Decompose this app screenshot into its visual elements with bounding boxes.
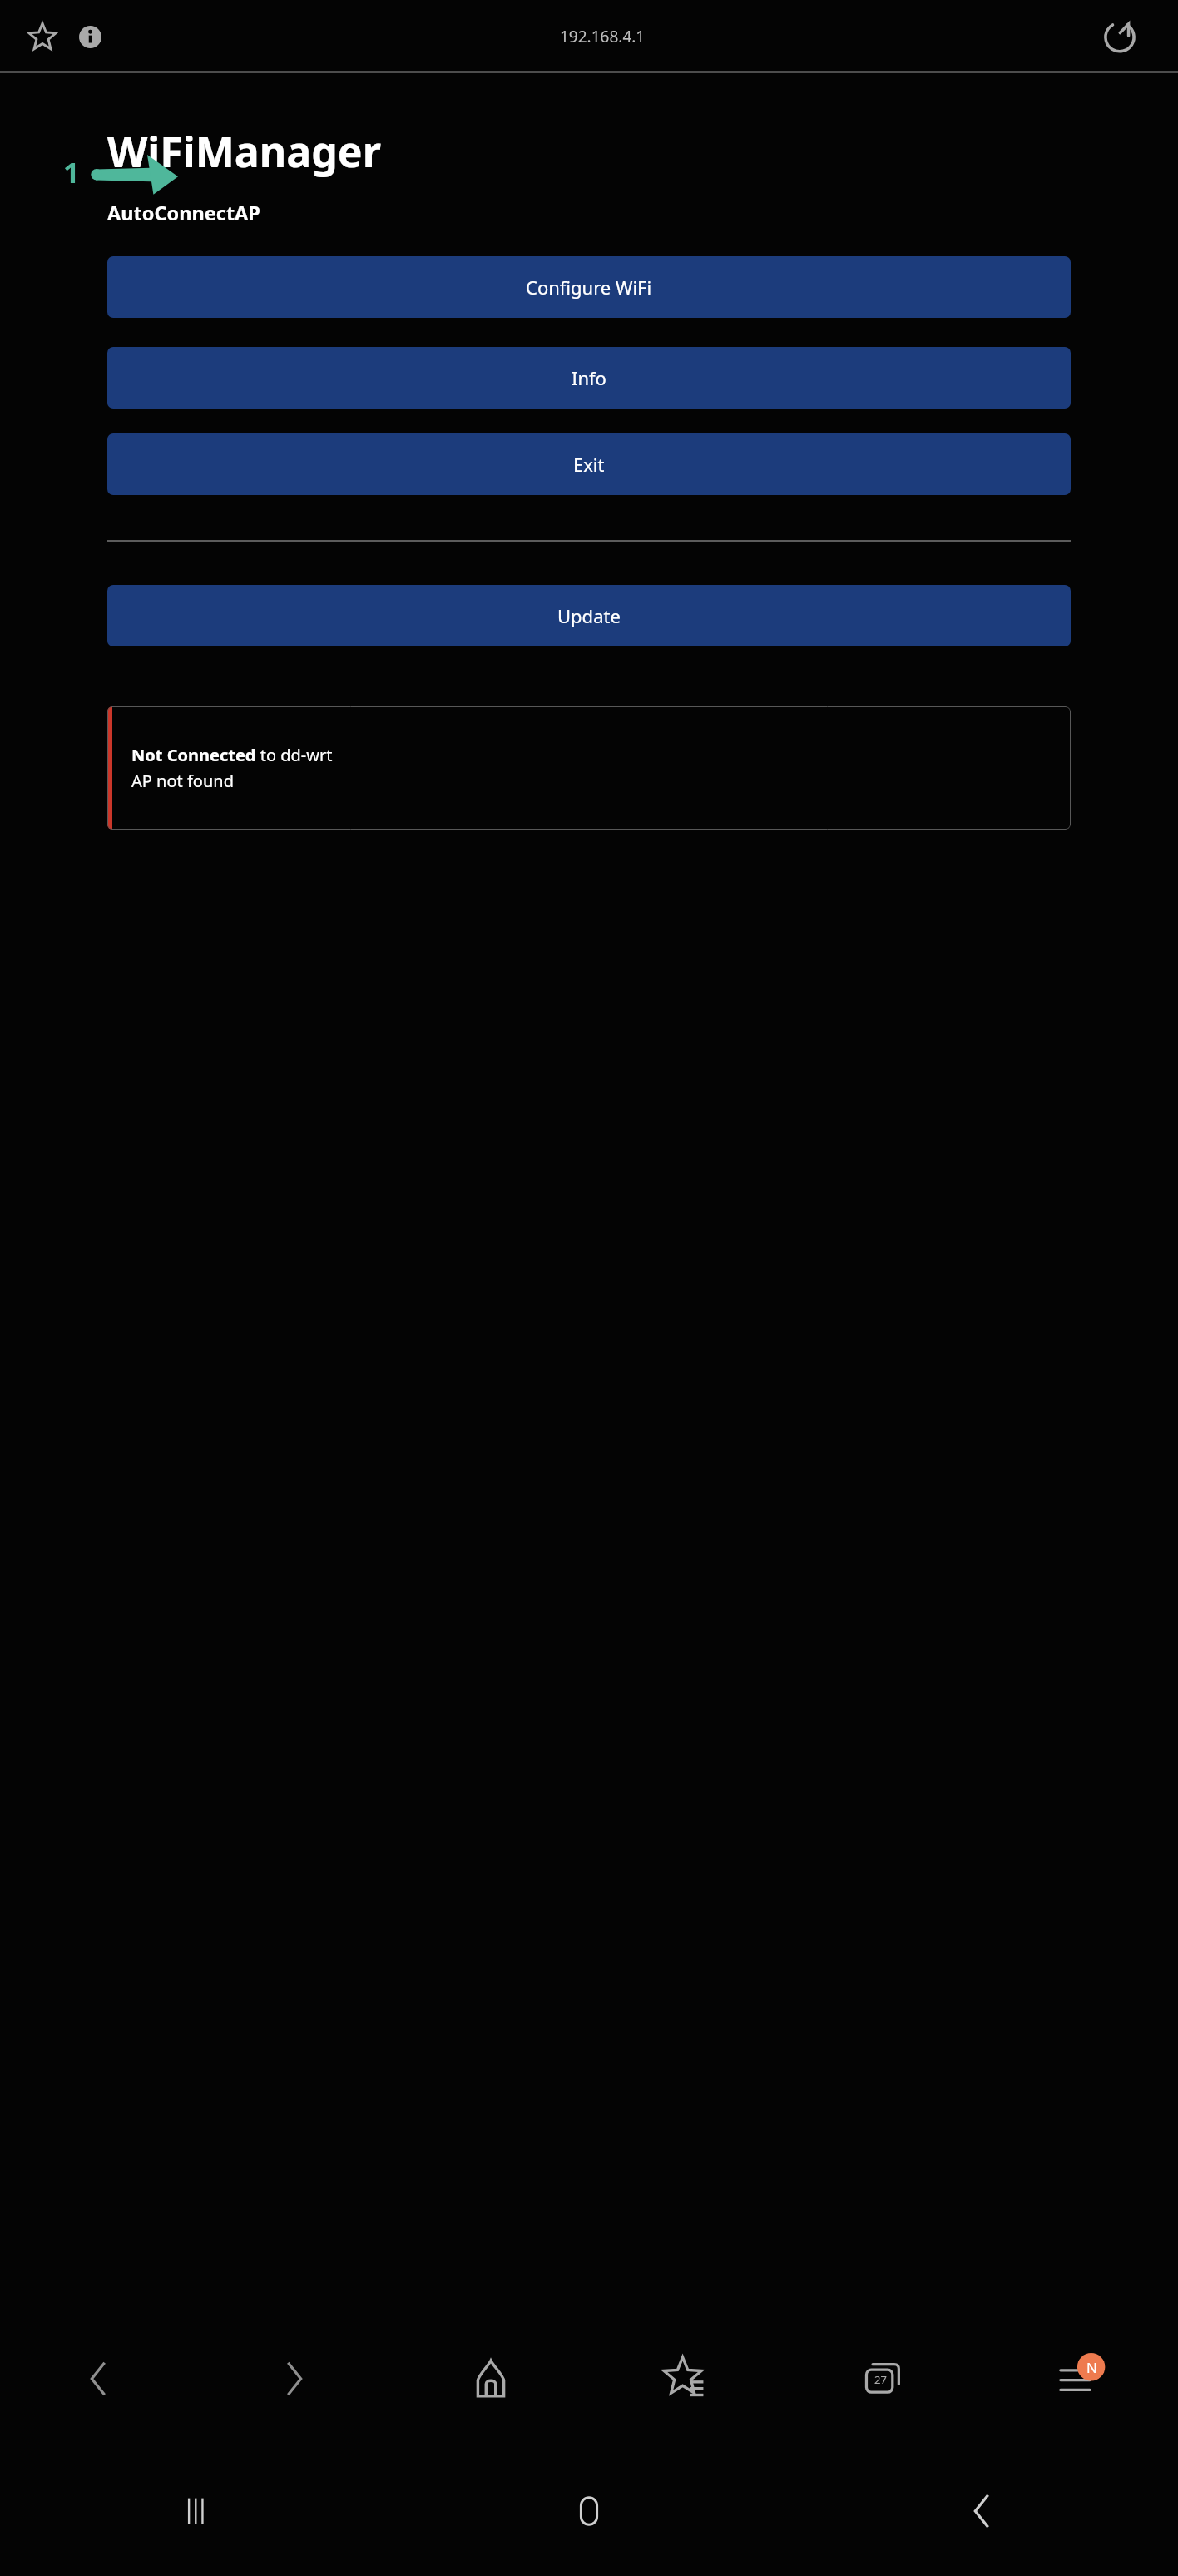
staticText: AP not found bbox=[131, 770, 234, 792]
button[interactable]: Update bbox=[107, 585, 1071, 646]
button[interactable]: Back bbox=[785, 2446, 1178, 2576]
staticText: Not Connected to dd-wrt bbox=[131, 744, 333, 766]
button[interactable]: Back bbox=[0, 2311, 196, 2446]
button[interactable]: Menu bbox=[982, 2311, 1178, 2446]
button[interactable]: Forward bbox=[196, 2311, 393, 2446]
button[interactable]: Exit bbox=[107, 433, 1071, 495]
button[interactable]: Reload page bbox=[1096, 13, 1143, 60]
button[interactable]: Tabs, 27 open bbox=[785, 2311, 982, 2446]
staticText: 1 bbox=[63, 153, 80, 191]
button[interactable]: Bookmarks bbox=[589, 2311, 785, 2446]
staticText: Update bbox=[557, 603, 621, 628]
staticText: 192.168.4.1 bbox=[560, 26, 646, 47]
staticText: Info bbox=[572, 365, 606, 390]
staticText: Exit bbox=[573, 452, 605, 477]
staticText: N bbox=[1086, 2358, 1097, 2377]
button[interactable]: Recent apps bbox=[0, 2446, 393, 2576]
button[interactable]: Info bbox=[107, 347, 1071, 409]
button[interactable]: Bookmark this page bbox=[21, 15, 64, 58]
staticText: AutoConnectAP bbox=[107, 200, 260, 226]
button[interactable]: Configure WiFi bbox=[107, 256, 1071, 318]
staticText: WiFiManager bbox=[107, 123, 382, 180]
staticText: 27 bbox=[874, 2372, 887, 2387]
button[interactable]: Home bbox=[393, 2311, 589, 2446]
staticText: Configure WiFi bbox=[526, 275, 652, 300]
button[interactable]: Site information bbox=[71, 17, 109, 56]
button[interactable]: Home bbox=[393, 2446, 785, 2576]
